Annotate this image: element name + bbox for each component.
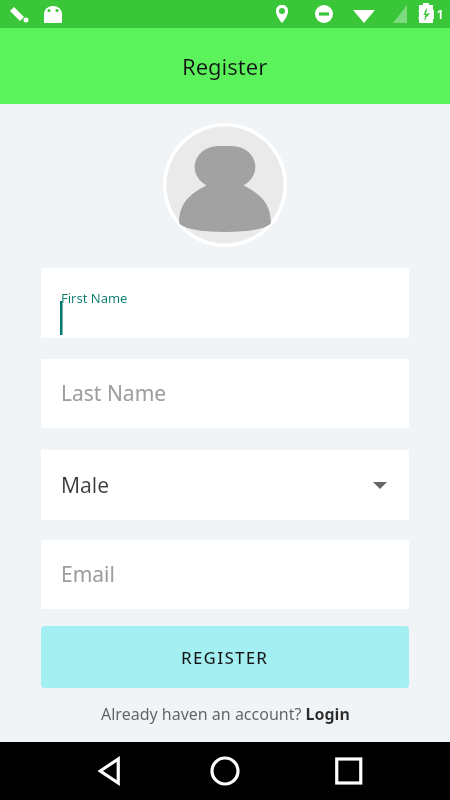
staticText: Already haven an account? Login: [101, 703, 350, 725]
button[interactable]: Email: [41, 540, 409, 609]
button[interactable]: Already haven an account? Login: [0, 703, 450, 725]
button[interactable]: First Name: [41, 268, 409, 338]
staticText: First Name: [61, 289, 128, 307]
button[interactable]: REGISTER: [41, 626, 409, 688]
staticText: Register: [182, 51, 268, 81]
staticText: REGISTER: [181, 646, 269, 669]
button[interactable]: Last Name: [41, 359, 409, 428]
staticText: Male: [61, 471, 110, 500]
staticText: 3:11: [418, 5, 444, 23]
staticText: Last Name: [61, 379, 167, 408]
button[interactable]: Profile photo: [163, 123, 287, 247]
button[interactable]: Male: [41, 450, 409, 520]
staticText: Email: [61, 560, 115, 589]
other: Select gender: [373, 478, 387, 492]
